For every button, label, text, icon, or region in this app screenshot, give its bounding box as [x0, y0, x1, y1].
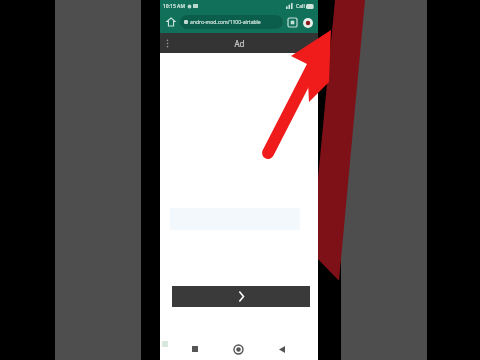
button[interactable]: Tabs	[286, 16, 299, 29]
staticText: Ad	[234, 38, 245, 49]
button[interactable]: andro-mod.com/1100-airtable	[180, 15, 283, 29]
button[interactable]: Home	[230, 341, 246, 357]
button[interactable]: More options	[301, 16, 314, 29]
staticText: andro-mod.com/1100-airtable	[190, 19, 261, 26]
button[interactable]: Ad options	[160, 36, 174, 50]
button[interactable]: Continue	[172, 286, 310, 307]
staticText: Call	[296, 3, 305, 10]
button[interactable]: Ad	[160, 33, 318, 53]
button[interactable]: Back	[274, 341, 290, 357]
staticText: 10:15 AM	[163, 3, 185, 10]
button[interactable]: Recent apps	[187, 341, 203, 357]
button[interactable]: Home	[164, 15, 178, 29]
